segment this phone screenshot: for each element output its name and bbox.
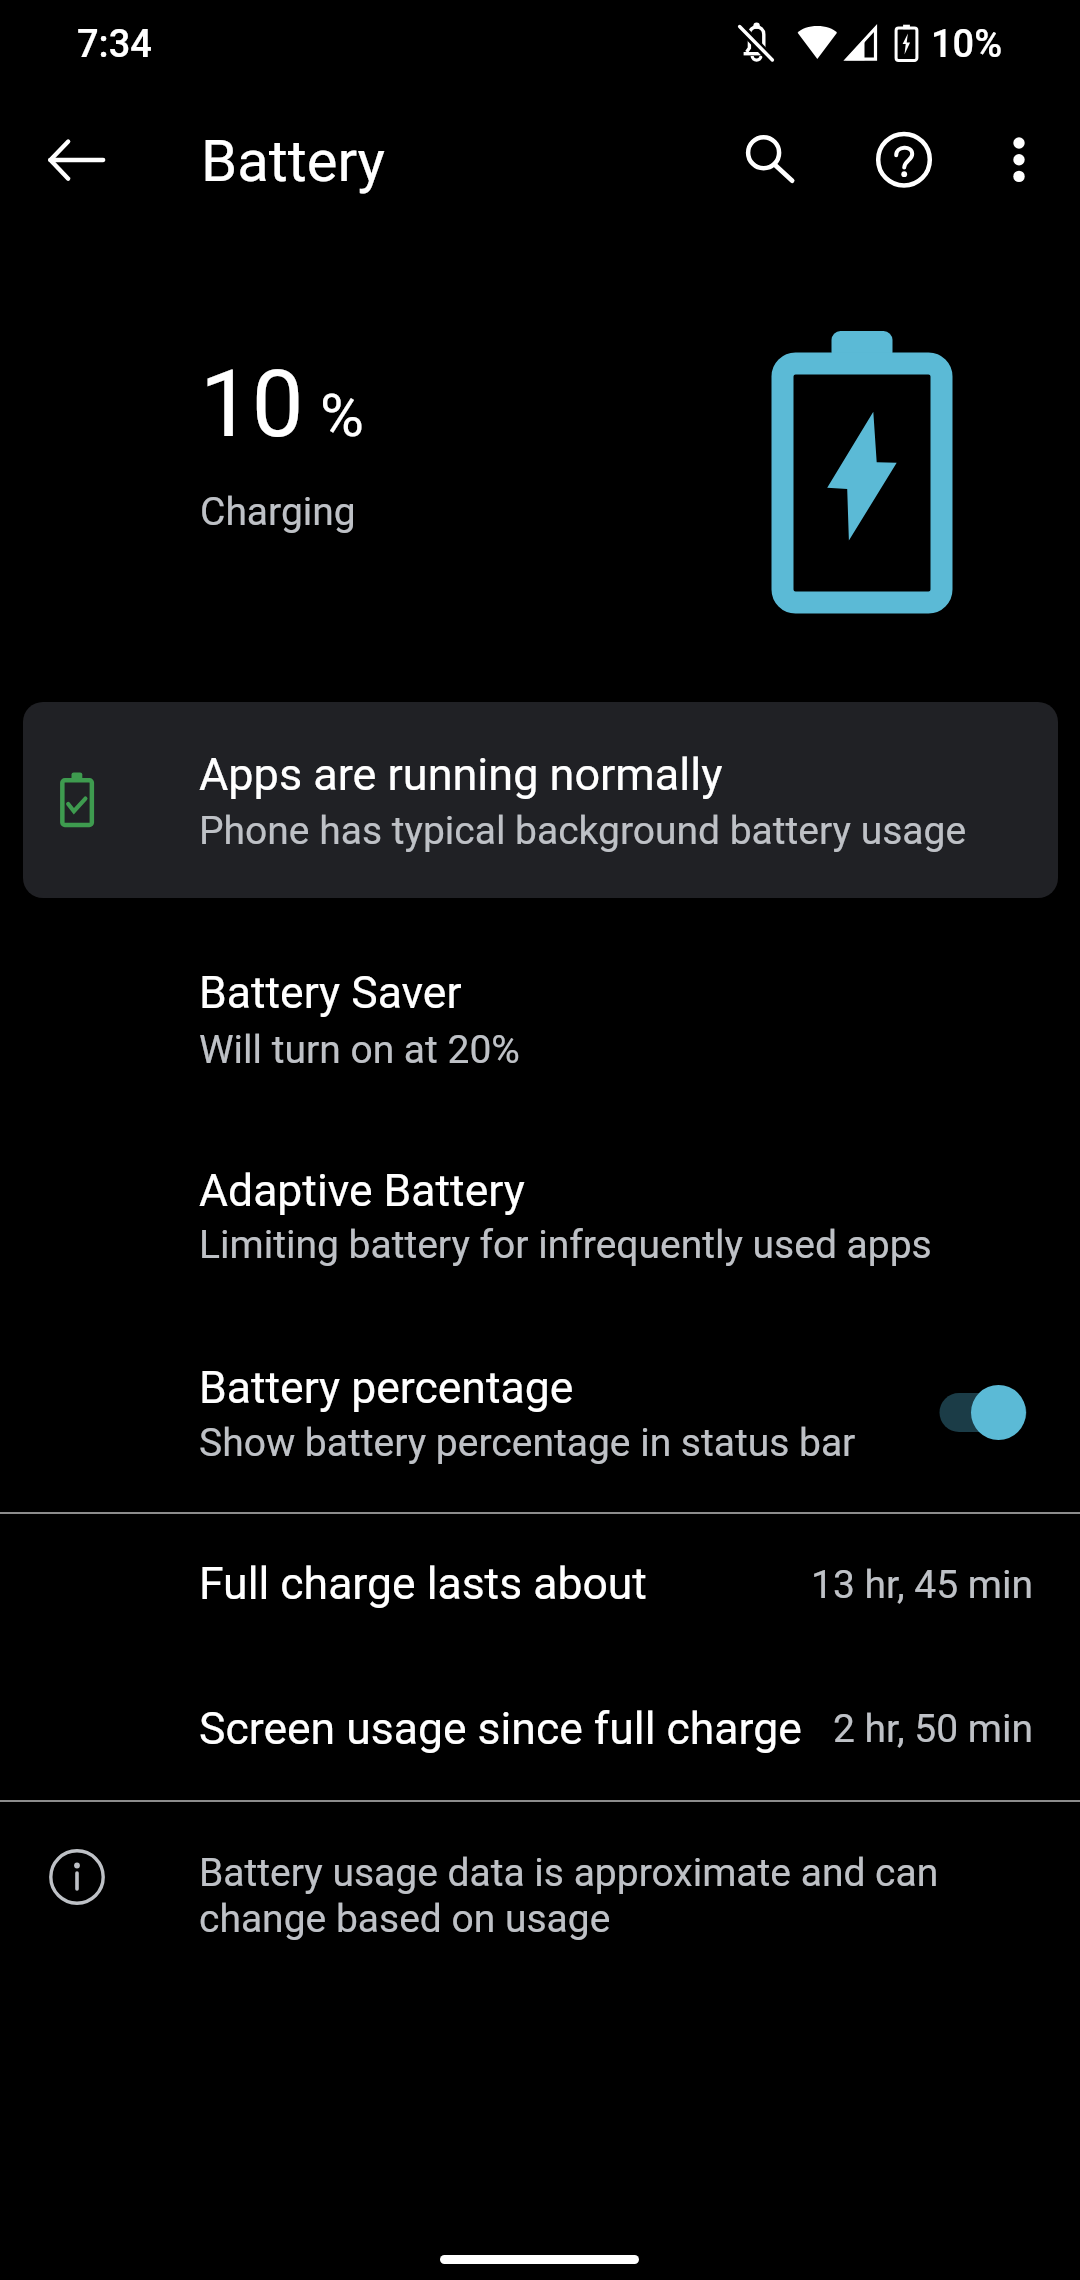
- button[interactable]: More options: [971, 112, 1067, 208]
- staticText: Battery: [201, 127, 385, 195]
- staticText: %: [320, 380, 364, 450]
- button[interactable]: Navigate up: [28, 112, 124, 208]
- staticText: 10: [200, 351, 304, 459]
- staticText: Battery usage data is approximate and ca…: [199, 1850, 1009, 1942]
- staticText: Adaptive Battery: [199, 1165, 525, 1217]
- staticText: Battery percentage: [199, 1362, 574, 1414]
- button[interactable]: [0, 1514, 1080, 1657]
- staticText: Charging: [200, 489, 356, 535]
- staticText: Screen usage since full charge: [199, 1703, 802, 1755]
- button[interactable]: [23, 702, 1058, 898]
- staticText: Limiting battery for infrequently used a…: [199, 1222, 932, 1268]
- button[interactable]: [0, 1141, 1080, 1321]
- staticText: 7:34: [77, 22, 152, 67]
- staticText: Phone has typical background battery usa…: [199, 808, 967, 854]
- button[interactable]: Help: [856, 112, 952, 208]
- staticText: 10%: [931, 22, 1003, 67]
- staticText: Will turn on at 20%: [199, 1027, 520, 1073]
- button[interactable]: [0, 1657, 1080, 1800]
- staticText: Apps are running normally: [199, 748, 723, 801]
- button[interactable]: Search settings: [722, 112, 818, 208]
- staticText: Battery Saver: [199, 967, 462, 1019]
- staticText: Full charge lasts about: [199, 1558, 647, 1610]
- staticText: 13 hr, 45 min: [0, 1562, 1033, 1608]
- button[interactable]: [0, 944, 1080, 1124]
- button[interactable]: Battery percentage toggle, on: [930, 1375, 1042, 1451]
- button[interactable]: [0, 1338, 1080, 1518]
- staticText: Show battery percentage in status bar: [199, 1420, 856, 1466]
- staticText: 2 hr, 50 min: [0, 1706, 1033, 1752]
